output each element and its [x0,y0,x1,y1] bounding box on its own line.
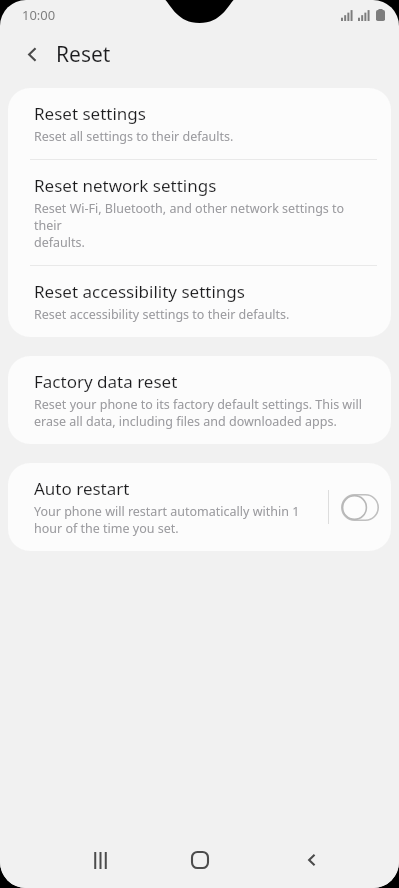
staticText: Factory data reset [34,370,178,393]
button[interactable]: Recent apps [78,838,122,882]
staticText: Reset all settings to their defaults. [34,128,234,145]
button[interactable]: Auto restart [329,486,391,529]
staticText: 10:00 [22,6,56,24]
button[interactable]: Navigate up [13,35,51,73]
staticText: Reset your phone to its factory default … [34,396,362,430]
staticText: Reset settings [34,102,146,125]
button[interactable]: Reset network settings [8,160,391,265]
button[interactable]: Reset accessibility settings [8,266,391,337]
button[interactable]: Back [290,838,334,882]
staticText: Reset network settings [34,174,217,197]
button[interactable]: Factory data reset [8,356,391,444]
staticText: Reset [56,40,111,69]
staticText: Reset Wi-Fi, Bluetooth, and other networ… [34,200,371,251]
button[interactable]: Home [178,838,222,882]
button[interactable]: Auto restart [8,477,328,537]
staticText: Auto restart [34,477,130,500]
button[interactable]: Reset settings [8,88,391,159]
staticText: Reset accessibility settings to their de… [34,306,290,323]
staticText: Your phone will restart automatically wi… [34,503,300,537]
staticText: Reset accessibility settings [34,280,245,303]
